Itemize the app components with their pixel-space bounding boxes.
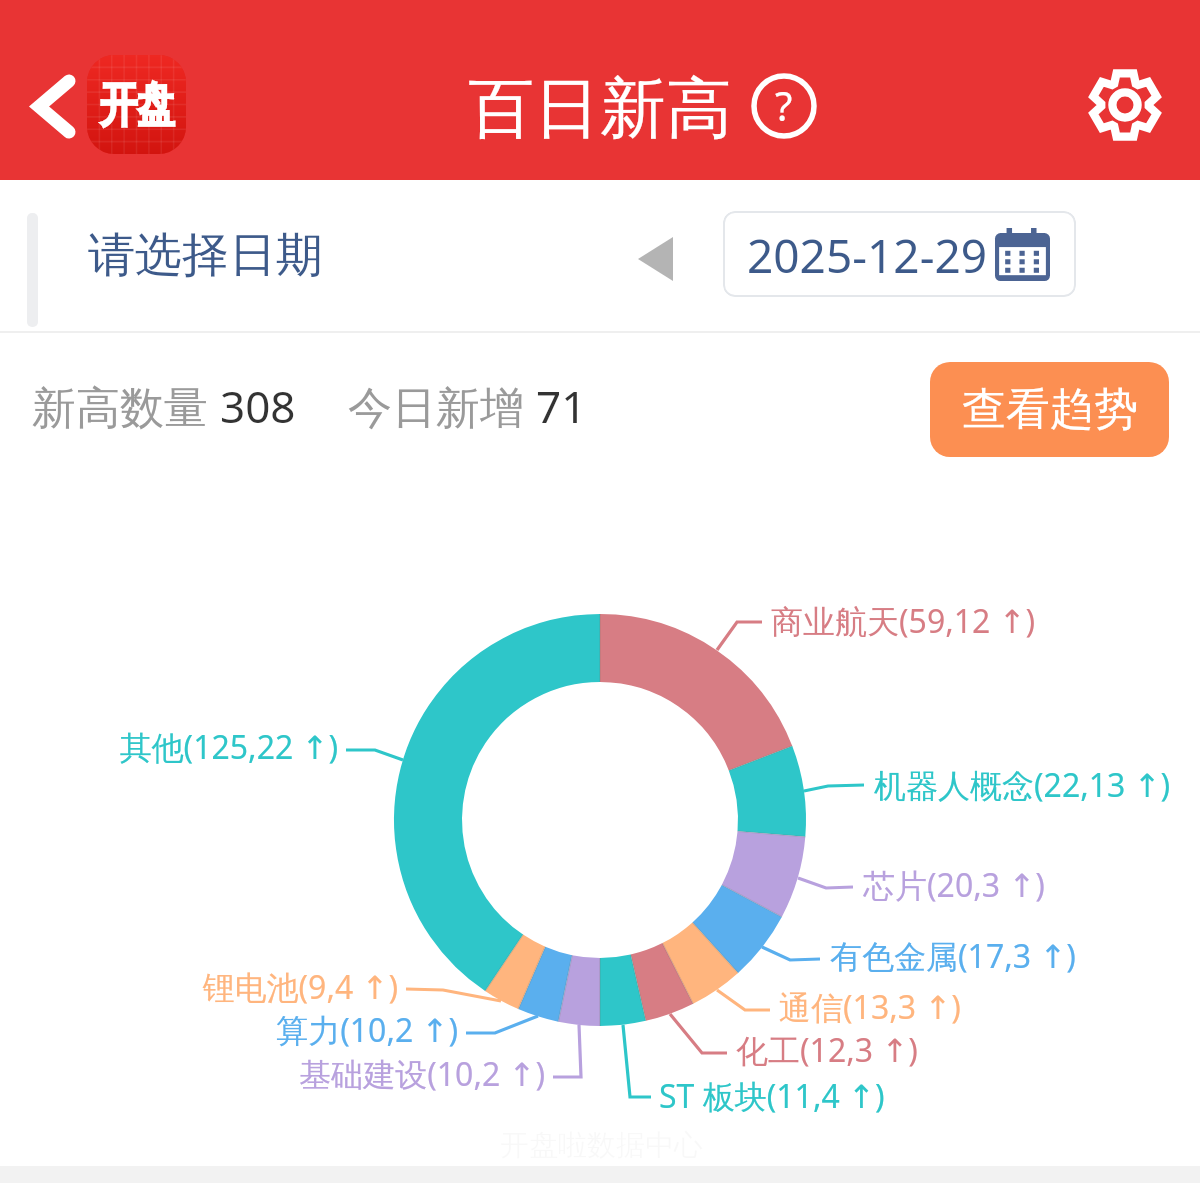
staticText: 开盘 — [100, 76, 174, 135]
staticText: 2025-12-29 — [747, 224, 988, 287]
staticText: 机器人概念(22,13 ↑) — [874, 763, 1200, 807]
staticText: 芯片(20,3 ↑) — [863, 863, 1200, 907]
staticText: 请选择日期 — [88, 226, 323, 285]
staticText: ? — [775, 78, 793, 132]
button[interactable]: 查看趋势 — [930, 362, 1169, 457]
staticText: 通信(13,3 ↑) — [779, 985, 1200, 1029]
staticText: 查看趋势 — [962, 382, 1138, 437]
staticText: ST 板块(11,4 ↑) — [659, 1074, 1159, 1118]
staticText: 锂电池(9,4 ↑) — [0, 965, 398, 1009]
staticText: 308 — [220, 376, 296, 436]
staticText: 化工(12,3 ↑) — [736, 1028, 1200, 1072]
staticText: 商业航天(59,12 ↑) — [771, 599, 1200, 643]
button[interactable]: Help — [748, 70, 820, 142]
button[interactable]: 开盘 app — [87, 55, 186, 154]
button[interactable]: Previous day — [614, 218, 696, 300]
staticText: 基础建设(10,2 ↑) — [45, 1052, 545, 1096]
button[interactable]: 2025-12-29 — [723, 211, 1076, 297]
staticText: 其他(125,22 ↑) — [0, 725, 338, 769]
staticText: 71 — [536, 376, 587, 436]
button[interactable]: Settings — [1080, 60, 1170, 150]
staticText: 有色金属(17,3 ↑) — [830, 934, 1200, 978]
staticText: 新高数量 — [32, 376, 220, 436]
staticText: 今日新增 — [348, 376, 536, 436]
staticText: 百日新高 — [468, 67, 732, 150]
staticText: 算力(10,2 ↑) — [0, 1008, 458, 1052]
button[interactable]: Back — [10, 62, 98, 150]
